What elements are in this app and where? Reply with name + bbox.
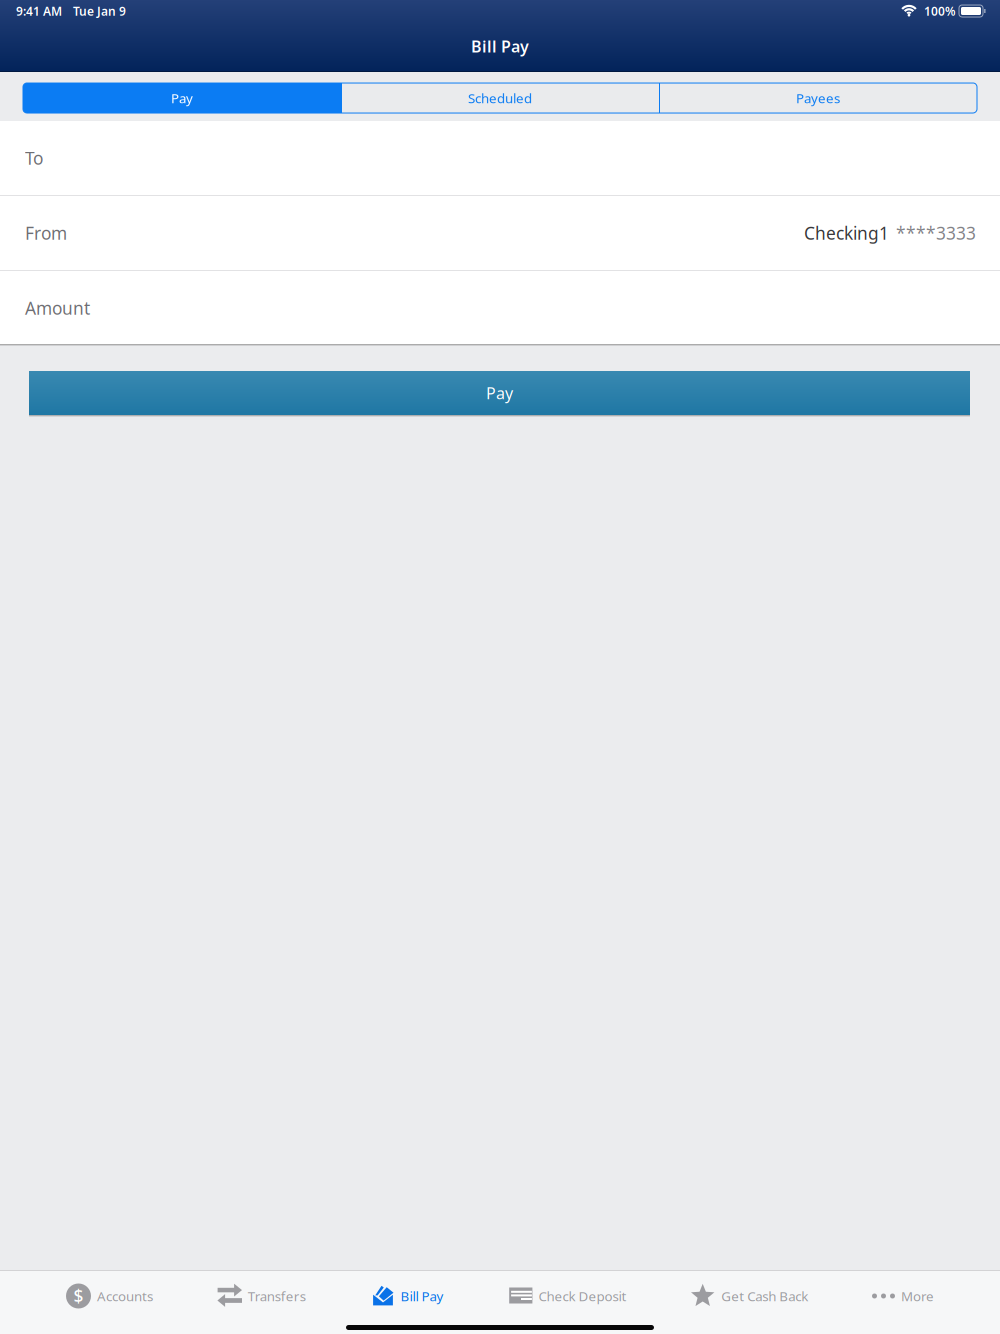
staticText: Payees (796, 89, 840, 107)
button[interactable]: Get Cash Back (690, 1271, 808, 1321)
staticText: Get Cash Back (721, 1287, 808, 1305)
button[interactable]: Check Deposit (507, 1271, 626, 1321)
button[interactable]: Scheduled (341, 83, 659, 113)
button[interactable]: Amount (0, 271, 1000, 345)
staticText: ****3333 (896, 221, 976, 244)
button[interactable]: Pay (23, 83, 341, 113)
staticText: 9:41 AM (16, 3, 62, 19)
staticText: Scheduled (468, 89, 532, 107)
staticText: Transfers (248, 1287, 306, 1305)
staticText: Accounts (97, 1287, 153, 1305)
staticText: Check Deposit (538, 1287, 626, 1305)
button[interactable]: More (872, 1271, 934, 1321)
button[interactable]: Payees (659, 83, 977, 113)
button[interactable]: From (0, 196, 1000, 270)
button[interactable]: To (0, 121, 1000, 195)
staticText: From (25, 221, 67, 244)
button[interactable]: Pay (29, 371, 970, 415)
staticText: Pay (486, 382, 513, 404)
button[interactable]: $ (66, 1271, 153, 1321)
staticText: 100% (924, 3, 956, 19)
staticText: Tue Jan 9 (73, 3, 126, 19)
staticText: To (25, 146, 43, 169)
staticText: $ (73, 1284, 83, 1307)
button[interactable]: Transfers (217, 1271, 306, 1321)
staticText: Checking1 (804, 221, 889, 244)
staticText: Bill Pay (471, 36, 529, 57)
button[interactable]: Bill Pay (370, 1271, 444, 1321)
staticText: More (901, 1287, 934, 1305)
staticText: Amount (25, 296, 90, 319)
staticText: Pay (171, 89, 193, 107)
staticText: Bill Pay (401, 1287, 444, 1305)
